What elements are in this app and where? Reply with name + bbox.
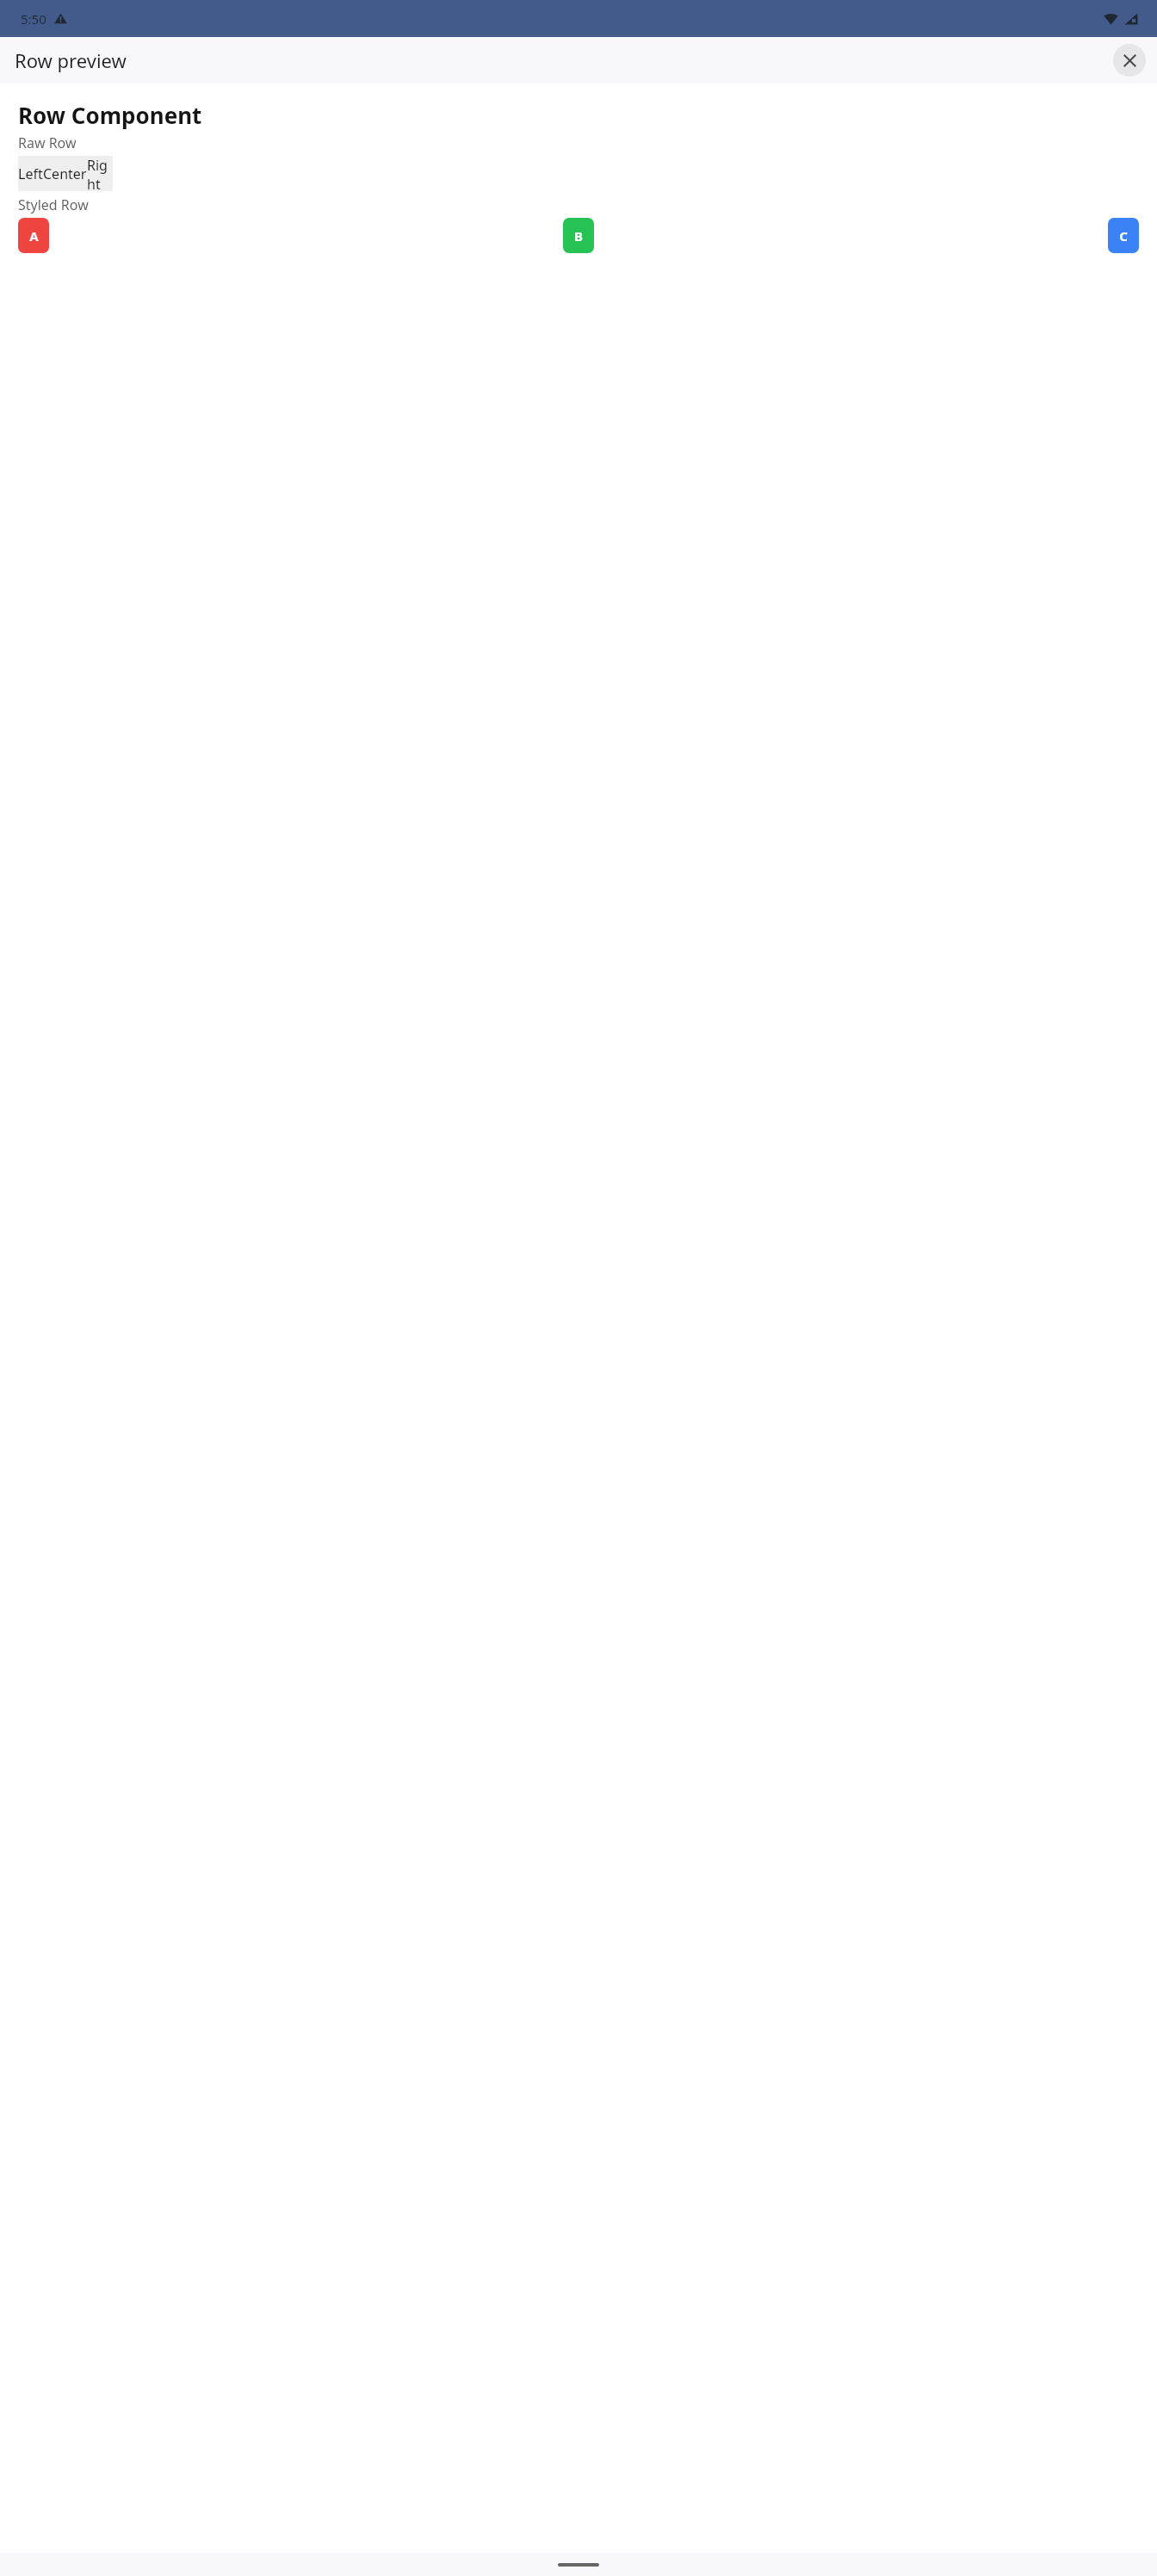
- staticText: Row Component: [18, 100, 202, 130]
- button[interactable]: B: [563, 218, 594, 253]
- staticText: B: [574, 227, 583, 245]
- staticText: Left: [18, 164, 43, 183]
- staticText: Row preview: [15, 47, 127, 73]
- staticText: Right: [87, 156, 113, 191]
- button[interactable]: Left: [18, 156, 113, 191]
- button[interactable]: A: [18, 218, 49, 253]
- staticText: Styled Row: [18, 195, 89, 214]
- staticText: C: [1119, 227, 1128, 245]
- button[interactable]: C: [1108, 218, 1139, 253]
- staticText: Center: [43, 164, 87, 183]
- staticText: A: [29, 227, 39, 245]
- staticText: Raw Row: [18, 133, 77, 152]
- staticText: 5:50: [21, 10, 46, 28]
- button[interactable]: Close: [1113, 44, 1146, 77]
